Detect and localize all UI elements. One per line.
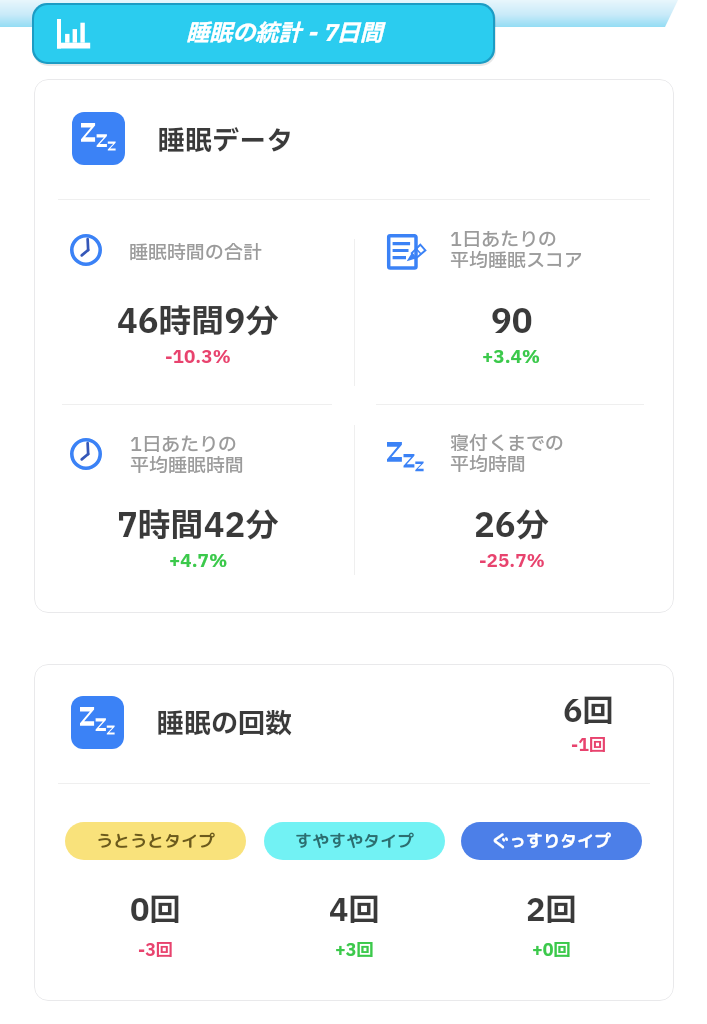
- staticText: 睡眠の回数: [157, 704, 292, 744]
- staticText: 1日あたりの 平均睡眠スコア: [450, 226, 584, 275]
- other: 睡眠の統計: [57, 19, 91, 49]
- staticText: +3回: [335, 938, 374, 963]
- staticText: 6回: [563, 689, 614, 733]
- staticText: 46時間9分: [117, 298, 279, 342]
- button[interactable]: うとうとタイプ: [65, 822, 246, 860]
- staticText: うとうとタイプ: [96, 829, 215, 853]
- staticText: 睡眠データ: [158, 121, 293, 161]
- staticText: +4.7%: [169, 548, 228, 575]
- staticText: 4回: [329, 888, 380, 932]
- button[interactable]: すやすやタイプ: [264, 822, 445, 860]
- staticText: ぐっすりタイプ: [492, 829, 611, 853]
- staticText: 睡眠の統計 - 7日間: [91, 17, 478, 51]
- staticText: 0回: [130, 888, 181, 932]
- button[interactable]: ぐっすりタイプ: [461, 822, 642, 860]
- staticText: 90: [491, 298, 533, 342]
- staticText: 寝付くまでの 平均時間: [450, 430, 565, 479]
- staticText: 26分: [474, 502, 549, 546]
- staticText: 1日あたりの 平均睡眠時間: [130, 431, 245, 480]
- staticText: 睡眠時間の合計: [129, 239, 263, 267]
- staticText: -10.3%: [165, 344, 231, 371]
- staticText: -3回: [138, 938, 173, 963]
- staticText: +3.4%: [482, 344, 541, 371]
- staticText: 7時間42分: [117, 502, 279, 546]
- staticText: +0回: [532, 938, 571, 963]
- staticText: すやすやタイプ: [295, 829, 414, 853]
- staticText: -1回: [571, 733, 606, 758]
- staticText: -25.7%: [479, 548, 545, 575]
- staticText: 2回: [526, 888, 577, 932]
- button[interactable]: 睡眠の統計: [34, 5, 493, 62]
